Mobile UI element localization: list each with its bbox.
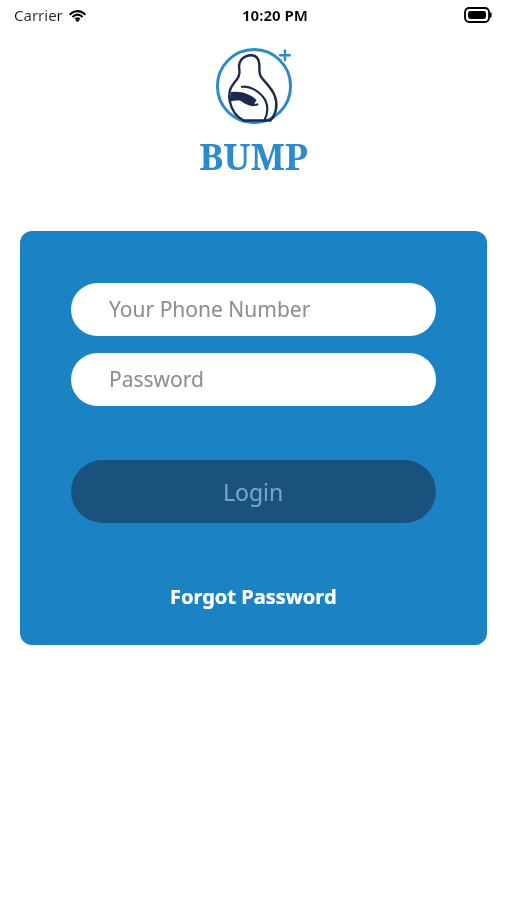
staticText: 10:20 PM — [242, 5, 308, 25]
button[interactable]: Forgot Password — [156, 575, 351, 618]
other: Wifi signal — [69, 9, 86, 22]
staticText: Carrier — [14, 5, 63, 25]
staticText: Forgot Password — [170, 583, 337, 610]
other: Battery full — [465, 8, 493, 22]
button[interactable]: Your Phone Number — [71, 283, 436, 336]
staticText: BUMP — [199, 132, 308, 181]
other: BUMP logo — [211, 44, 297, 130]
staticText: Login — [223, 476, 284, 507]
staticText: Password — [109, 365, 204, 394]
staticText: Your Phone Number — [109, 295, 311, 324]
button[interactable]: Login — [71, 460, 436, 523]
button[interactable]: Password — [71, 353, 436, 406]
